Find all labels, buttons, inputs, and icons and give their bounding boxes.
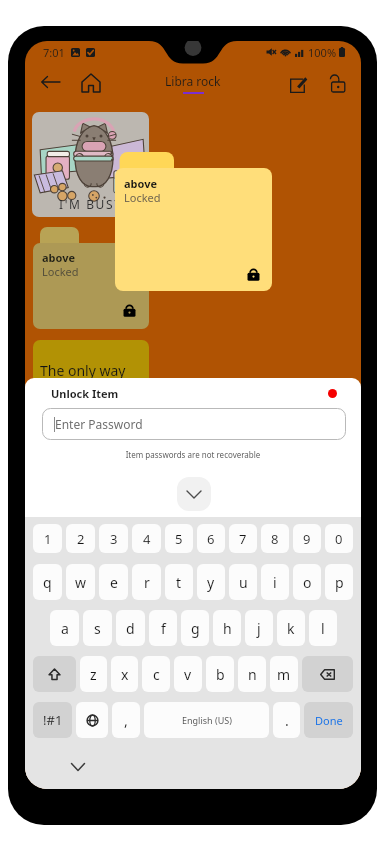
button[interactable]: 7 xyxy=(229,524,257,553)
staticText: , xyxy=(124,711,128,730)
button[interactable]: 1 xyxy=(33,524,62,553)
button[interactable]: Shift xyxy=(33,656,76,692)
staticText: 2 xyxy=(77,530,85,548)
staticText: i xyxy=(273,573,277,592)
staticText: Enter Password xyxy=(55,416,143,432)
button[interactable]: 9 xyxy=(293,524,321,553)
button[interactable]: m xyxy=(270,656,298,692)
staticText: f xyxy=(161,619,166,638)
staticText: 3 xyxy=(110,530,118,548)
staticText: Item passwords are not recoverable xyxy=(25,449,361,460)
staticText: 100% xyxy=(308,45,337,60)
button[interactable]: h xyxy=(213,610,241,646)
button[interactable]: Done xyxy=(304,702,353,738)
staticText: 0 xyxy=(335,530,343,548)
button[interactable]: i xyxy=(261,564,289,600)
button[interactable]: g xyxy=(181,610,209,646)
button[interactable]: Home xyxy=(77,69,105,97)
staticText: w xyxy=(75,573,87,592)
button[interactable]: q xyxy=(33,564,62,600)
staticText: q xyxy=(43,573,52,592)
button[interactable]: s xyxy=(83,610,112,646)
staticText: e xyxy=(110,573,118,592)
button[interactable]: Collapse xyxy=(177,477,211,511)
button[interactable]: Backspace xyxy=(302,656,353,692)
button[interactable]: I'M BUSY xyxy=(32,112,149,217)
staticText: s xyxy=(94,619,101,638)
button[interactable]: Back xyxy=(37,68,65,96)
staticText: above xyxy=(42,250,76,265)
staticText: 8 xyxy=(271,530,279,548)
button[interactable]: p xyxy=(325,564,353,600)
button[interactable]: !#1 xyxy=(33,702,72,738)
button[interactable]: x xyxy=(111,656,138,692)
button[interactable]: 6 xyxy=(197,524,225,553)
staticText: c xyxy=(153,665,160,684)
button[interactable]: Edit xyxy=(284,70,312,98)
button[interactable]: , xyxy=(112,702,140,738)
button[interactable]: c xyxy=(142,656,170,692)
button[interactable]: r xyxy=(132,564,161,600)
staticText: 4 xyxy=(143,530,151,548)
button[interactable]: k xyxy=(277,610,305,646)
button[interactable]: e xyxy=(99,564,128,600)
staticText: Locked xyxy=(42,264,79,279)
button[interactable]: Recording xyxy=(328,389,337,398)
staticText: a xyxy=(61,619,69,638)
staticText: h xyxy=(223,619,232,638)
staticText: 9 xyxy=(303,530,311,548)
button[interactable]: f xyxy=(149,610,177,646)
staticText: j xyxy=(257,619,261,638)
button[interactable]: t xyxy=(165,564,193,600)
button[interactable]: j xyxy=(245,610,273,646)
staticText: y xyxy=(207,573,215,592)
staticText: 6 xyxy=(207,530,215,548)
button[interactable]: z xyxy=(80,656,107,692)
staticText: x xyxy=(121,665,129,684)
button[interactable]: d xyxy=(116,610,145,646)
button[interactable]: 5 xyxy=(165,524,193,553)
staticText: 1 xyxy=(44,530,52,548)
staticText: n xyxy=(248,665,257,684)
staticText: Unlock Item xyxy=(51,386,119,401)
staticText: t xyxy=(176,573,182,592)
button[interactable]: 4 xyxy=(132,524,161,553)
button[interactable]: 8 xyxy=(261,524,289,553)
button[interactable]: n xyxy=(238,656,266,692)
staticText: z xyxy=(90,665,97,684)
staticText: 7 xyxy=(239,530,247,548)
button[interactable]: 0 xyxy=(325,524,353,553)
staticText: d xyxy=(126,619,135,638)
button[interactable]: w xyxy=(66,564,95,600)
staticText: I'M BUSY xyxy=(59,196,123,212)
button[interactable]: The only way xyxy=(33,340,149,390)
staticText: k xyxy=(287,619,295,638)
staticText: u xyxy=(239,573,248,592)
staticText: Libra rock xyxy=(165,73,221,89)
staticText: p xyxy=(335,573,344,592)
button[interactable]: above xyxy=(115,152,272,291)
staticText: The only way xyxy=(40,361,126,380)
staticText: b xyxy=(216,665,225,684)
button[interactable]: Enter Password xyxy=(42,408,346,440)
button[interactable]: o xyxy=(293,564,321,600)
staticText: g xyxy=(191,619,200,638)
button[interactable]: y xyxy=(197,564,225,600)
button[interactable]: above xyxy=(33,227,149,329)
button[interactable]: b xyxy=(206,656,234,692)
button[interactable]: . xyxy=(273,702,300,738)
staticText: . xyxy=(285,711,289,730)
button[interactable]: l xyxy=(309,610,337,646)
button[interactable]: a xyxy=(50,610,79,646)
button[interactable]: Language xyxy=(76,702,108,738)
button[interactable]: 3 xyxy=(99,524,128,553)
staticText: English (US) xyxy=(182,714,232,726)
button[interactable]: Unlock xyxy=(324,69,352,97)
staticText: 5 xyxy=(175,530,183,548)
button[interactable]: u xyxy=(229,564,257,600)
staticText: above xyxy=(124,176,158,191)
button[interactable]: 2 xyxy=(66,524,95,553)
staticText: v xyxy=(184,665,192,684)
button[interactable]: English (US) xyxy=(144,702,269,738)
button[interactable]: v xyxy=(174,656,202,692)
